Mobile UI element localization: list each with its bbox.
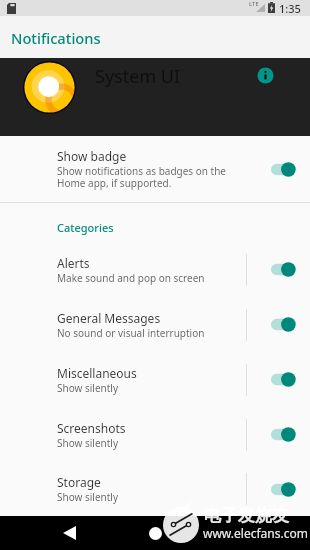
button[interactable]: Show badge [0,136,310,202]
staticText: Miscellaneous [57,365,137,381]
staticText: General Messages [57,310,161,326]
button[interactable]: Toggle [271,482,294,497]
button[interactable]: Miscellaneous [0,352,310,407]
staticText: Show notifications as badges on the Home… [57,164,226,190]
staticText: LTE [249,0,259,8]
staticText: No sound or visual interruption [57,326,205,340]
staticText: 电子发烧友 [204,505,289,526]
button[interactable]: Storage [0,462,310,516]
staticText: Show silently [57,381,119,395]
staticText: Notifications [11,28,101,48]
button[interactable]: Toggle [271,262,294,277]
staticText: 1:35 [279,1,301,16]
staticText: Categories [57,220,114,235]
staticText: Show badge [57,148,127,164]
staticText: Show silently [57,490,119,504]
button[interactable]: General Messages [0,297,310,352]
staticText: Storage [57,474,101,490]
staticText: Alerts [57,255,90,271]
staticText: Make sound and pop on screen [57,271,205,285]
button[interactable]: Toggle [271,372,294,387]
staticText: System UI [95,64,181,89]
button[interactable]: Toggle [271,162,294,177]
button[interactable]: Back [63,526,76,540]
staticText: www.elecfans.com [203,525,308,541]
button[interactable]: Toggle [271,427,294,442]
button[interactable]: Alerts [0,242,310,297]
button[interactable]: Home [149,527,162,540]
staticText: Screenshots [57,420,126,436]
staticText: Show silently [57,436,119,450]
button[interactable]: Screenshots [0,407,310,462]
button[interactable]: Toggle [271,317,294,332]
button[interactable]: App info [257,67,274,84]
